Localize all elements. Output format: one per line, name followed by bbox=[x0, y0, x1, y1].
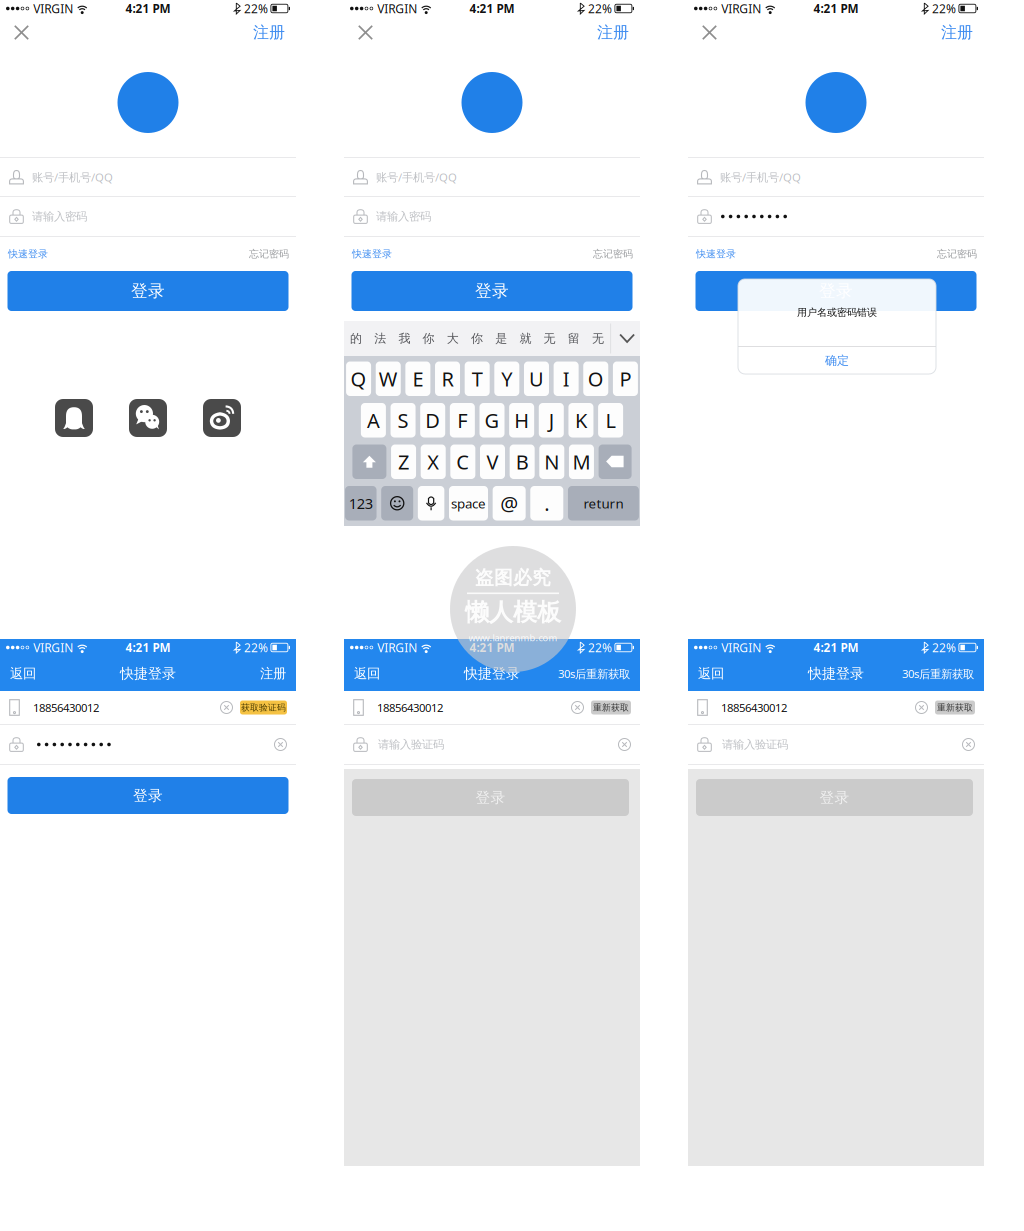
staticText: K bbox=[575, 407, 587, 434]
button[interactable]: Clear bbox=[220, 701, 233, 714]
staticText: 忘记密码 bbox=[937, 248, 977, 260]
button[interactable]: T bbox=[465, 361, 490, 396]
button[interactable]: Clear bbox=[274, 738, 287, 751]
button[interactable]: 重新获取 bbox=[935, 700, 975, 714]
staticText: 无 bbox=[544, 331, 556, 346]
staticText: Q bbox=[351, 365, 367, 392]
button[interactable]: N bbox=[539, 444, 564, 479]
button[interactable]: space bbox=[449, 486, 488, 520]
button[interactable]: X bbox=[421, 444, 446, 479]
button[interactable]: J bbox=[539, 403, 564, 437]
button[interactable]: 快速登录 bbox=[696, 243, 736, 265]
staticText: J bbox=[549, 407, 554, 434]
staticText: 我 bbox=[398, 331, 410, 346]
button[interactable]: D bbox=[420, 403, 445, 437]
button[interactable]: return bbox=[568, 486, 639, 520]
staticText: www.lanrenmb.com bbox=[468, 631, 557, 644]
button[interactable]: 返回 bbox=[7, 660, 39, 687]
button[interactable]: B bbox=[510, 444, 535, 479]
button[interactable]: W bbox=[376, 361, 401, 396]
button[interactable]: M bbox=[569, 444, 594, 479]
staticText: 就 bbox=[519, 331, 531, 346]
button[interactable]: QQ login bbox=[55, 399, 93, 437]
button[interactable]: Clear bbox=[962, 738, 975, 751]
staticText: 快速登录 bbox=[696, 248, 736, 260]
button[interactable]: 忘记密码 bbox=[593, 243, 633, 265]
button[interactable]: Delete bbox=[599, 444, 632, 479]
staticText: F bbox=[457, 407, 467, 434]
staticText: 4:21 PM bbox=[813, 0, 858, 16]
staticText: 重新获取 bbox=[593, 702, 629, 713]
button[interactable]: Close bbox=[350, 18, 381, 47]
button[interactable]: C bbox=[450, 444, 475, 479]
button[interactable]: 登录 bbox=[696, 779, 973, 816]
staticText: @ bbox=[500, 490, 518, 517]
button[interactable]: Emoji bbox=[381, 486, 413, 520]
button[interactable]: A bbox=[361, 403, 386, 437]
button[interactable]: V bbox=[480, 444, 505, 479]
button[interactable]: Close bbox=[6, 18, 37, 47]
button[interactable]: 登录 bbox=[7, 271, 288, 311]
button[interactable]: I bbox=[554, 361, 579, 396]
button[interactable]: 30s后重新获取 bbox=[899, 661, 977, 686]
button[interactable]: 忘记密码 bbox=[937, 243, 977, 265]
button[interactable]: Dictation bbox=[418, 486, 444, 520]
button[interactable]: S bbox=[390, 403, 415, 437]
button[interactable]: 登录 bbox=[7, 777, 288, 814]
button[interactable]: 登录 bbox=[352, 779, 629, 816]
button[interactable]: Y bbox=[494, 361, 519, 396]
staticText: 无 bbox=[592, 331, 604, 346]
button[interactable]: Weibo login bbox=[203, 399, 241, 437]
button[interactable]: K bbox=[568, 403, 593, 437]
button[interactable]: Z bbox=[391, 444, 416, 479]
staticText: 是 bbox=[495, 331, 507, 346]
button[interactable]: 忘记密码 bbox=[249, 243, 289, 265]
button[interactable]: 返回 bbox=[695, 660, 727, 687]
button[interactable]: 注册 bbox=[592, 16, 634, 49]
button[interactable]: 快速登录 bbox=[8, 243, 48, 265]
staticText: 18856430012 bbox=[721, 700, 787, 715]
staticText: 留 bbox=[568, 331, 580, 346]
button[interactable]: Q bbox=[346, 361, 371, 396]
button[interactable]: P bbox=[613, 361, 638, 396]
button[interactable]: Clear bbox=[915, 701, 928, 714]
button[interactable]: F bbox=[450, 403, 475, 437]
button[interactable]: @ bbox=[493, 486, 526, 520]
button[interactable]: Clear bbox=[571, 701, 584, 714]
button[interactable]: 登录 bbox=[695, 271, 976, 311]
staticText: 4:21 PM bbox=[125, 639, 170, 655]
button[interactable]: L bbox=[598, 403, 623, 437]
button[interactable]: 注册 bbox=[936, 16, 978, 49]
button[interactable]: 注册 bbox=[257, 660, 289, 687]
staticText: A bbox=[367, 407, 380, 434]
button[interactable]: O bbox=[583, 361, 608, 396]
staticText: 账号/手机号/QQ bbox=[376, 169, 457, 185]
button[interactable]: 30s后重新获取 bbox=[555, 661, 633, 686]
button[interactable]: 注册 bbox=[248, 16, 290, 49]
staticText: O bbox=[588, 365, 604, 392]
button[interactable]: R bbox=[435, 361, 460, 396]
button[interactable]: 获取验证码 bbox=[240, 700, 287, 714]
staticText: R bbox=[441, 365, 453, 392]
button[interactable]: U bbox=[524, 361, 549, 396]
button[interactable]: G bbox=[479, 403, 504, 437]
button[interactable]: 确定 bbox=[738, 347, 936, 374]
button[interactable]: 123 bbox=[345, 486, 377, 520]
button[interactable]: Close bbox=[694, 18, 725, 47]
staticText: 你 bbox=[423, 331, 435, 346]
button[interactable]: 登录 bbox=[351, 271, 632, 311]
staticText: 4:21 PM bbox=[125, 0, 170, 16]
button[interactable]: E bbox=[405, 361, 430, 396]
button[interactable]: . bbox=[530, 486, 563, 520]
button[interactable]: 返回 bbox=[351, 660, 383, 687]
staticText: 重新获取 bbox=[937, 702, 973, 713]
staticText: VIRGIN bbox=[721, 0, 761, 17]
staticText: VIRGIN bbox=[377, 0, 417, 17]
button[interactable]: 快速登录 bbox=[352, 243, 392, 265]
button[interactable]: Shift bbox=[352, 444, 386, 479]
staticText: P bbox=[619, 365, 631, 392]
button[interactable]: 重新获取 bbox=[591, 700, 631, 714]
button[interactable]: H bbox=[509, 403, 534, 437]
button[interactable]: WeChat login bbox=[129, 399, 167, 437]
button[interactable]: Clear bbox=[618, 738, 631, 751]
